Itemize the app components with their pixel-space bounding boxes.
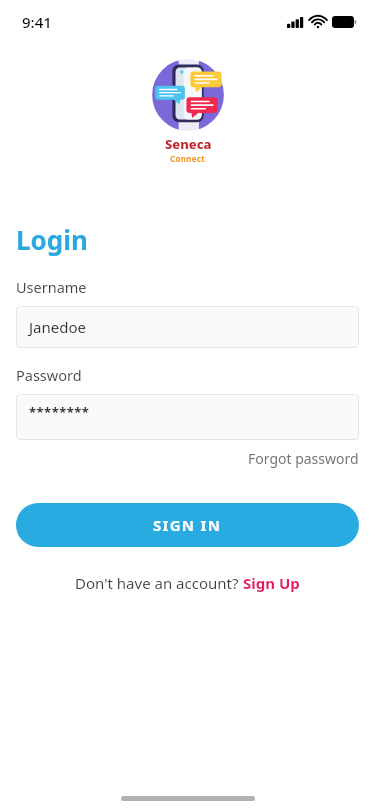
staticText: Don't have an account?: [75, 573, 243, 593]
button[interactable]: Forgot password: [248, 449, 359, 468]
staticText: Janedoe: [29, 317, 87, 337]
other: Wi-Fi: [310, 16, 326, 28]
other: Battery: [332, 16, 357, 28]
staticText: Sign Up: [243, 573, 300, 593]
staticText: SIGN IN: [153, 515, 222, 535]
staticText: 9:41: [22, 12, 52, 32]
staticText: Password: [16, 365, 82, 385]
staticText: Connect: [170, 153, 206, 164]
staticText: ********: [29, 403, 90, 421]
button[interactable]: Janedoe: [16, 306, 359, 348]
staticText: Login: [16, 222, 88, 257]
other: Cellular signal: [287, 17, 304, 28]
button[interactable]: ********: [16, 394, 359, 440]
staticText: Seneca: [165, 135, 212, 153]
button[interactable]: Sign Up: [243, 573, 300, 593]
staticText: Username: [16, 277, 87, 297]
staticText: Forgot password: [248, 449, 359, 468]
button[interactable]: SIGN IN: [16, 503, 359, 547]
